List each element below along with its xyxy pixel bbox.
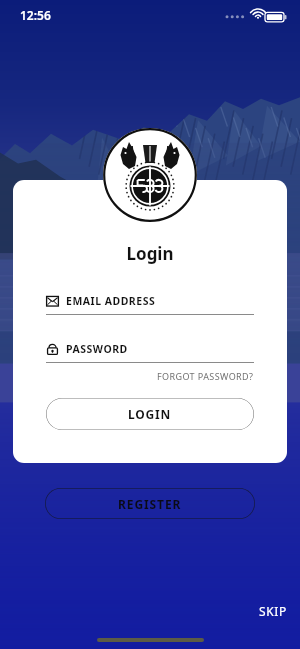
staticText: PASSWORD bbox=[66, 342, 128, 356]
staticText: LOGIN bbox=[128, 406, 172, 422]
button[interactable]: REGISTER bbox=[45, 488, 255, 519]
button[interactable]: EMAIL ADDRESS bbox=[46, 294, 254, 315]
button[interactable]: PASSWORD bbox=[46, 342, 254, 363]
staticText: EMAIL ADDRESS bbox=[66, 294, 156, 308]
button[interactable]: SKIP bbox=[255, 599, 291, 623]
staticText: SKIP bbox=[259, 603, 287, 619]
staticText: Login bbox=[46, 242, 254, 265]
staticText: FORGOT PASSWORD? bbox=[157, 370, 254, 382]
staticText: 12:56 bbox=[20, 7, 51, 23]
button[interactable]: FORGOT PASSWORD? bbox=[157, 368, 254, 384]
button[interactable]: LOGIN bbox=[46, 398, 254, 430]
staticText: REGISTER bbox=[118, 496, 182, 512]
